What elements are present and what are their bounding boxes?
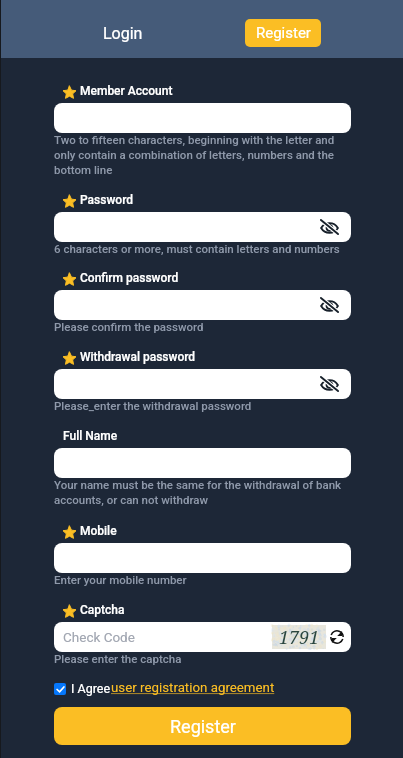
button[interactable]: Login xyxy=(93,21,153,45)
button[interactable]: Show password xyxy=(320,297,339,313)
button[interactable] xyxy=(54,448,351,478)
staticText: Check Code xyxy=(63,629,135,645)
staticText: Password xyxy=(80,193,134,207)
staticText: Your name must be the same for the withd… xyxy=(54,478,351,507)
button[interactable]: Register xyxy=(245,19,321,47)
staticText: Mobile xyxy=(80,524,117,538)
staticText: Full Name xyxy=(63,429,118,443)
staticText: Confirm password xyxy=(80,271,179,285)
staticText: Please_enter the withdrawal password xyxy=(54,399,252,412)
button[interactable] xyxy=(54,543,351,573)
button[interactable]: Register xyxy=(54,707,351,745)
staticText: I Agree xyxy=(71,681,111,696)
button[interactable]: Show password xyxy=(320,219,339,235)
staticText: Two to fifteen characters, beginning wit… xyxy=(54,133,351,177)
staticText: Register xyxy=(170,716,236,737)
button[interactable] xyxy=(54,103,351,133)
button[interactable]: user registration agreement xyxy=(111,680,275,696)
staticText: 6 characters or more, must contain lette… xyxy=(54,242,340,255)
button[interactable]: Show password xyxy=(320,376,339,392)
staticText: 1791 xyxy=(279,625,320,649)
button[interactable]: Refresh captcha xyxy=(330,630,344,644)
staticText: Captcha xyxy=(80,603,125,617)
staticText: Register xyxy=(256,24,311,42)
button[interactable]: Show password xyxy=(54,212,351,242)
staticText: Please confirm the password xyxy=(54,320,204,333)
staticText: Login xyxy=(103,24,143,43)
staticText: Member Account xyxy=(80,84,173,98)
staticText: Please enter the captcha xyxy=(54,652,182,665)
button[interactable]: Check Code xyxy=(54,622,351,652)
staticText: Enter your mobile number xyxy=(54,573,187,586)
button[interactable]: I Agree xyxy=(54,681,275,697)
button[interactable]: Show password xyxy=(54,290,351,320)
button[interactable]: Show password xyxy=(54,369,351,399)
staticText: Withdrawal password xyxy=(80,350,196,364)
